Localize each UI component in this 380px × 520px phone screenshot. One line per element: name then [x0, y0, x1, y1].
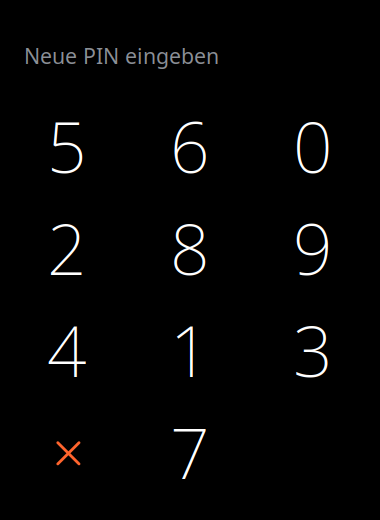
staticText: 2	[47, 202, 87, 294]
button[interactable]: 7	[128, 401, 251, 503]
staticText: 7	[170, 406, 210, 498]
button[interactable]: 2	[5, 197, 128, 299]
staticText: 3	[293, 304, 333, 396]
button[interactable]: 6	[128, 95, 251, 197]
button[interactable]: 1	[128, 299, 251, 401]
button[interactable]: 8	[128, 197, 251, 299]
button[interactable]: 5	[5, 95, 128, 197]
button[interactable]: 3	[251, 299, 374, 401]
button[interactable]: 0	[251, 95, 374, 197]
staticText: 5	[47, 100, 87, 192]
staticText: Neue PIN eingeben	[24, 41, 219, 70]
staticText: 1	[170, 304, 210, 396]
staticText: 8	[170, 202, 210, 294]
button[interactable]: 9	[251, 197, 374, 299]
staticText: 9	[293, 202, 333, 294]
staticText: 0	[293, 100, 333, 192]
staticText: 6	[170, 100, 210, 192]
button[interactable]: Löschen	[5, 401, 128, 503]
staticText: 4	[47, 304, 87, 396]
button[interactable]: 4	[5, 299, 128, 401]
